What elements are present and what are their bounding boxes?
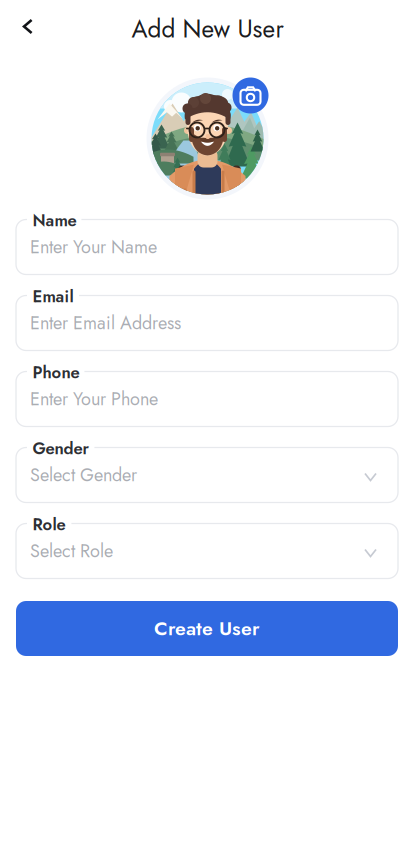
staticText: Enter Email Address: [30, 310, 181, 336]
staticText: Add New User: [131, 11, 283, 47]
button[interactable]: Change profile photo: [146, 77, 268, 199]
staticText: Phone: [32, 360, 79, 385]
staticText: Role: [32, 512, 65, 537]
button[interactable]: Create User: [16, 601, 398, 656]
staticText: Enter Your Phone: [30, 386, 158, 412]
staticText: Name: [32, 208, 76, 233]
button[interactable]: Back: [0, 6, 48, 47]
staticText: Email: [32, 284, 73, 309]
staticText: Select Gender: [30, 462, 137, 488]
staticText: Gender: [32, 436, 89, 461]
staticText: Create User: [154, 614, 260, 642]
staticText: Enter Your Name: [30, 234, 157, 260]
staticText: Select Role: [30, 538, 113, 564]
